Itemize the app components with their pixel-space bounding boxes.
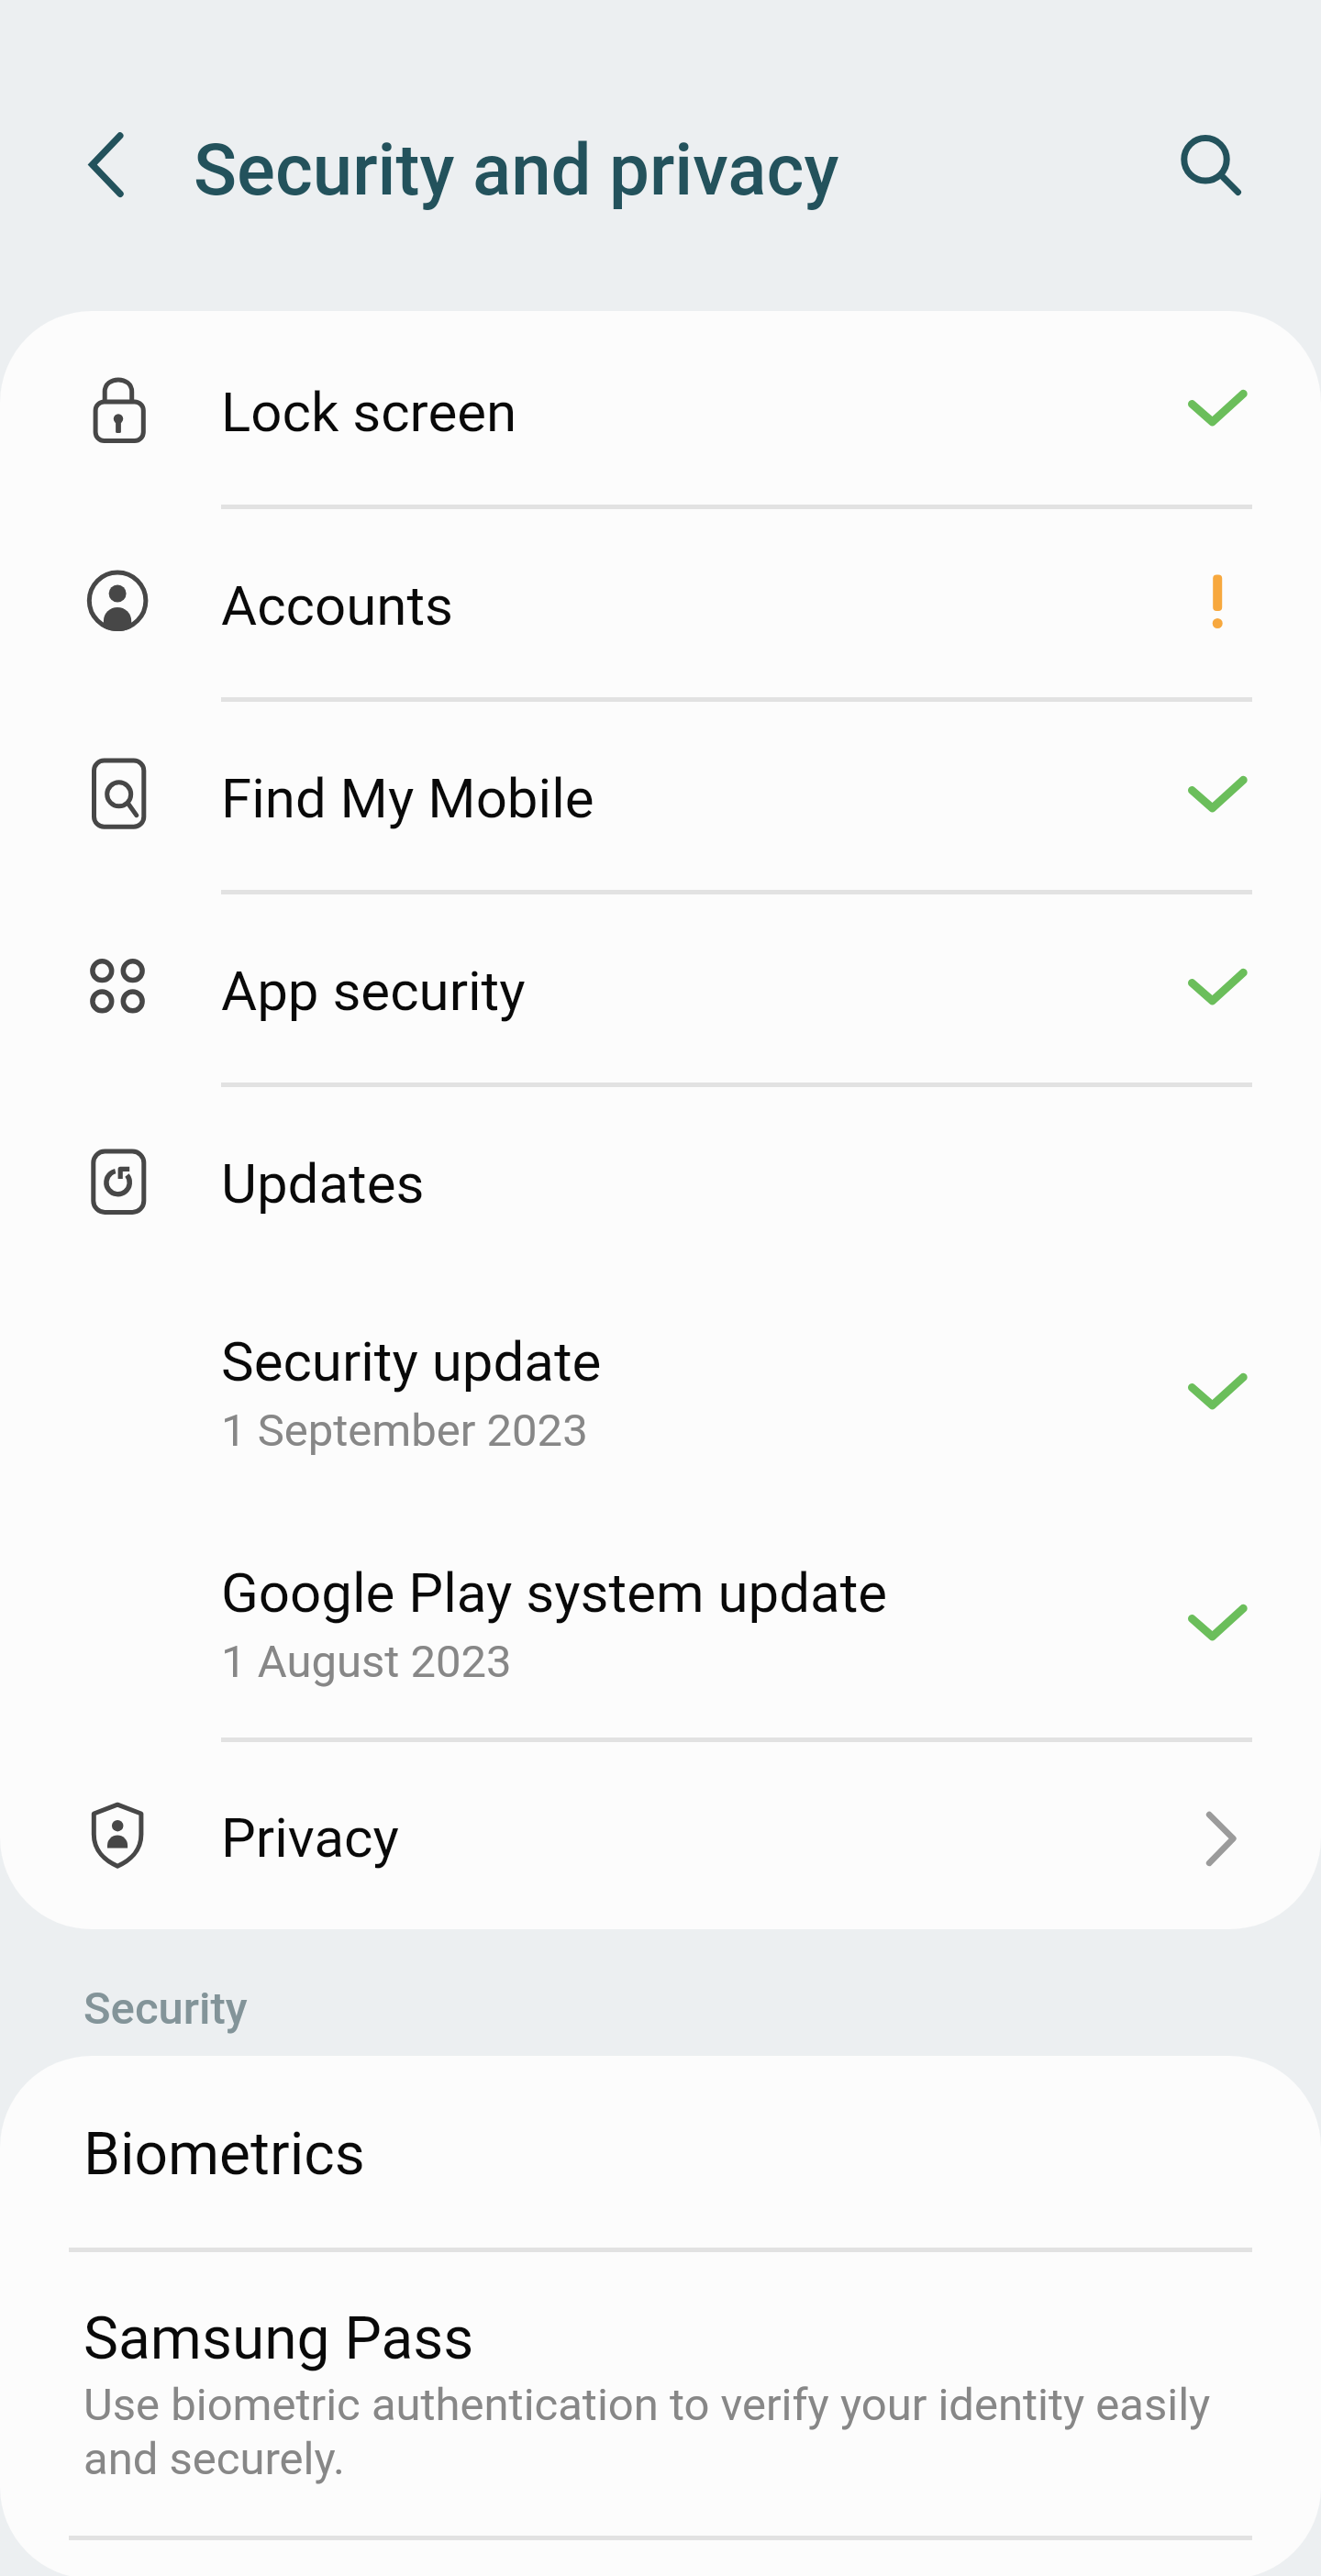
button[interactable]: Find My Mobile (0, 699, 1321, 892)
button[interactable]: Updates (0, 1084, 1321, 1277)
button[interactable]: Privacy (0, 1739, 1321, 1929)
button[interactable]: Google Play system update (0, 1508, 1321, 1739)
staticText: Security (83, 1982, 248, 2035)
staticText: Privacy (221, 1805, 399, 1870)
staticText: Accounts (221, 573, 453, 638)
staticText: Samsung Pass (83, 2304, 474, 2373)
button[interactable]: Navigate up (55, 114, 158, 217)
staticText: App security (221, 959, 526, 1023)
staticText: Biometrics (83, 2120, 365, 2189)
staticText: Google Play system update (221, 1560, 888, 1625)
staticText: Find My Mobile (221, 766, 594, 830)
button[interactable]: App security (0, 892, 1321, 1084)
staticText: Lock screen (221, 380, 517, 444)
staticText: Security and privacy (194, 128, 839, 212)
staticText: 1 September 2023 (221, 1405, 588, 1457)
button[interactable]: Biometrics (0, 2056, 1321, 2249)
button[interactable]: Search (1155, 109, 1256, 210)
button[interactable]: Security update (0, 1277, 1321, 1508)
button[interactable]: Lock screen (0, 311, 1321, 506)
staticText: Use biometric authentication to verify y… (83, 2379, 1229, 2485)
staticText: Updates (221, 1151, 425, 1216)
staticText: Security update (221, 1329, 602, 1393)
staticText: 1 August 2023 (221, 1636, 512, 1688)
button[interactable]: Samsung Pass (0, 2249, 1321, 2536)
button[interactable]: Accounts (0, 506, 1321, 699)
